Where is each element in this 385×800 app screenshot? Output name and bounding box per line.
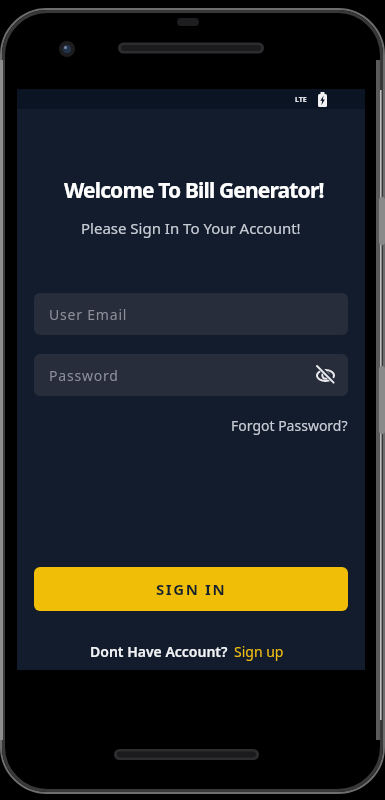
button[interactable]: Password (34, 354, 348, 396)
button[interactable]: Sign up (234, 642, 284, 661)
staticText: Forgot Password? (231, 416, 348, 435)
button[interactable]: Forgot Password? (231, 416, 348, 435)
button[interactable]: User Email (34, 293, 348, 335)
staticText: User Email (49, 305, 128, 324)
button[interactable]: SIGN IN (34, 567, 348, 611)
staticText: Please Sign In To Your Account! (81, 218, 301, 238)
staticText: Password (49, 366, 119, 385)
staticText: Welcome To Bill Generator! (64, 176, 324, 205)
staticText: Sign up (234, 642, 284, 661)
staticText: LTE (295, 95, 307, 105)
staticText: SIGN IN (156, 579, 227, 599)
staticText: Dont Have Account? (90, 642, 228, 661)
